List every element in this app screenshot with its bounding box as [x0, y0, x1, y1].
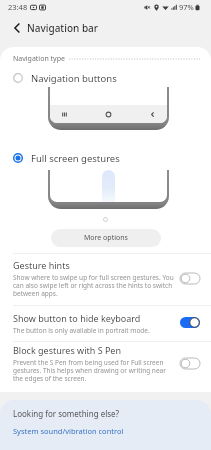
staticText: Navigation buttons [31, 72, 117, 85]
staticText: The button is only available in portrait… [13, 326, 150, 335]
button[interactable]: Block gestures with S Pen [0, 341, 211, 383]
staticText: Show where to swipe up for full screen g… [13, 273, 176, 298]
staticText: Gesture hints [13, 259, 70, 271]
staticText: Full screen gestures [31, 152, 120, 165]
staticText: Block gestures with S Pen [13, 344, 121, 356]
staticText: Navigation bar [27, 21, 99, 35]
staticText: Prevent the S Pen from being used for Fu… [13, 358, 176, 383]
button[interactable]: Show button to hide keyboard [0, 309, 211, 335]
button[interactable]: Back [7, 18, 27, 38]
button[interactable]: System sound/vibration control [13, 426, 124, 436]
button[interactable]: More options [51, 229, 161, 247]
button[interactable]: Full screen gestures [0, 149, 211, 167]
staticText: Navigation type [13, 54, 65, 64]
staticText: More options [84, 233, 128, 243]
button[interactable]: Gesture hints [0, 256, 211, 298]
staticText: 97% [179, 2, 194, 12]
button[interactable]: Navigation buttons [0, 69, 211, 87]
staticText: Looking for something else? [13, 408, 120, 419]
staticText: Show button to hide keyboard [13, 312, 141, 324]
staticText: 23:48 [8, 2, 28, 12]
